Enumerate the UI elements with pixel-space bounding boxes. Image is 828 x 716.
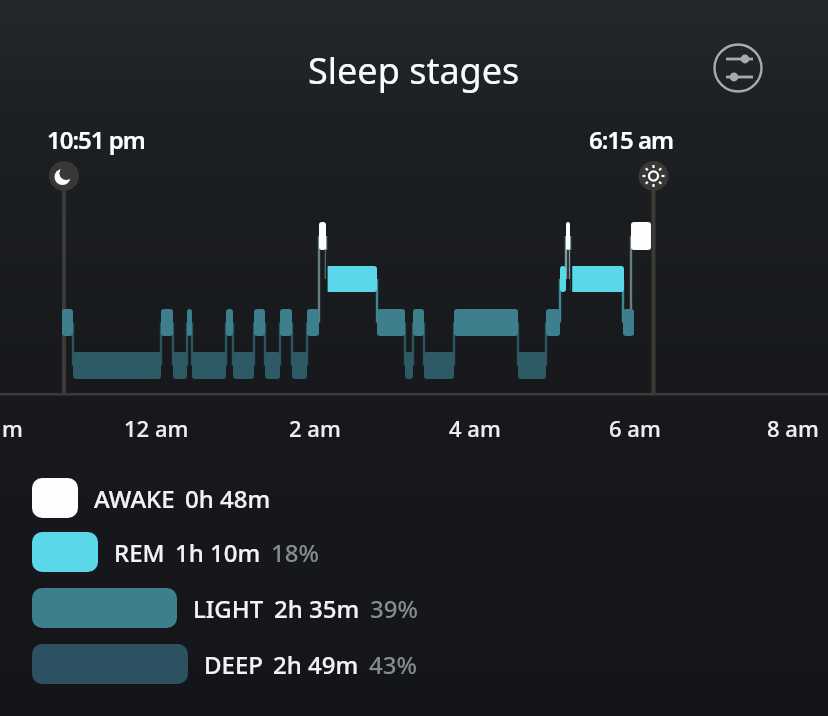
staticText: REM [114,536,165,569]
button[interactable]: LIGHT [32,588,418,628]
button[interactable]: REM [32,532,319,572]
staticText: 2h 49m [273,648,359,681]
staticText: 2h 35m [274,592,360,625]
staticText: AWAKE [94,482,175,515]
button[interactable]: DEEP [32,644,417,684]
button[interactable] [712,42,764,94]
button[interactable]: AWAKE [32,478,271,518]
staticText: m [2,413,23,443]
staticText: LIGHT [193,592,264,625]
staticText: 6:15 am [589,123,674,156]
staticText: 8 am [767,413,819,443]
staticText: 10:51 pm [47,123,145,156]
staticText: 1h 10m [175,536,261,569]
staticText: 12 am [124,413,189,443]
staticText: 2 am [289,413,341,443]
staticText: 39% [370,592,418,625]
staticText: 4 am [449,413,501,443]
staticText: 43% [369,648,417,681]
staticText: 18% [271,536,319,569]
staticText: 6 am [609,413,661,443]
staticText: Sleep stages [308,46,520,95]
staticText: 0h 48m [185,482,271,515]
staticText: DEEP [204,648,263,681]
